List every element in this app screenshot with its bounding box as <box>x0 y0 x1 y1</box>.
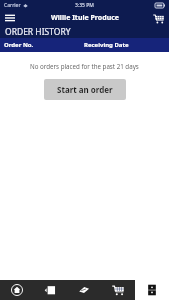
staticText: Order No. <box>4 41 34 49</box>
staticText: Receiving Date <box>84 41 129 49</box>
staticText: ORDER HISTORY <box>5 26 71 38</box>
staticText: Carrier <box>4 2 21 9</box>
staticText: Willie Itule Produce <box>51 13 119 23</box>
button[interactable]: Orders <box>135 280 169 300</box>
button[interactable]: Menu <box>0 11 20 25</box>
button[interactable]: Catalog <box>33 280 67 300</box>
staticText: 3:35 PM <box>75 2 94 9</box>
button[interactable]: Cart <box>147 11 169 25</box>
staticText: Start an order <box>57 84 113 95</box>
button[interactable]: Guide <box>67 280 101 300</box>
button[interactable]: Start an order <box>44 79 126 100</box>
staticText: No orders placed for the past 21 days <box>30 62 139 70</box>
button[interactable]: Cart <box>101 280 135 300</box>
button[interactable]: Home <box>0 280 33 300</box>
